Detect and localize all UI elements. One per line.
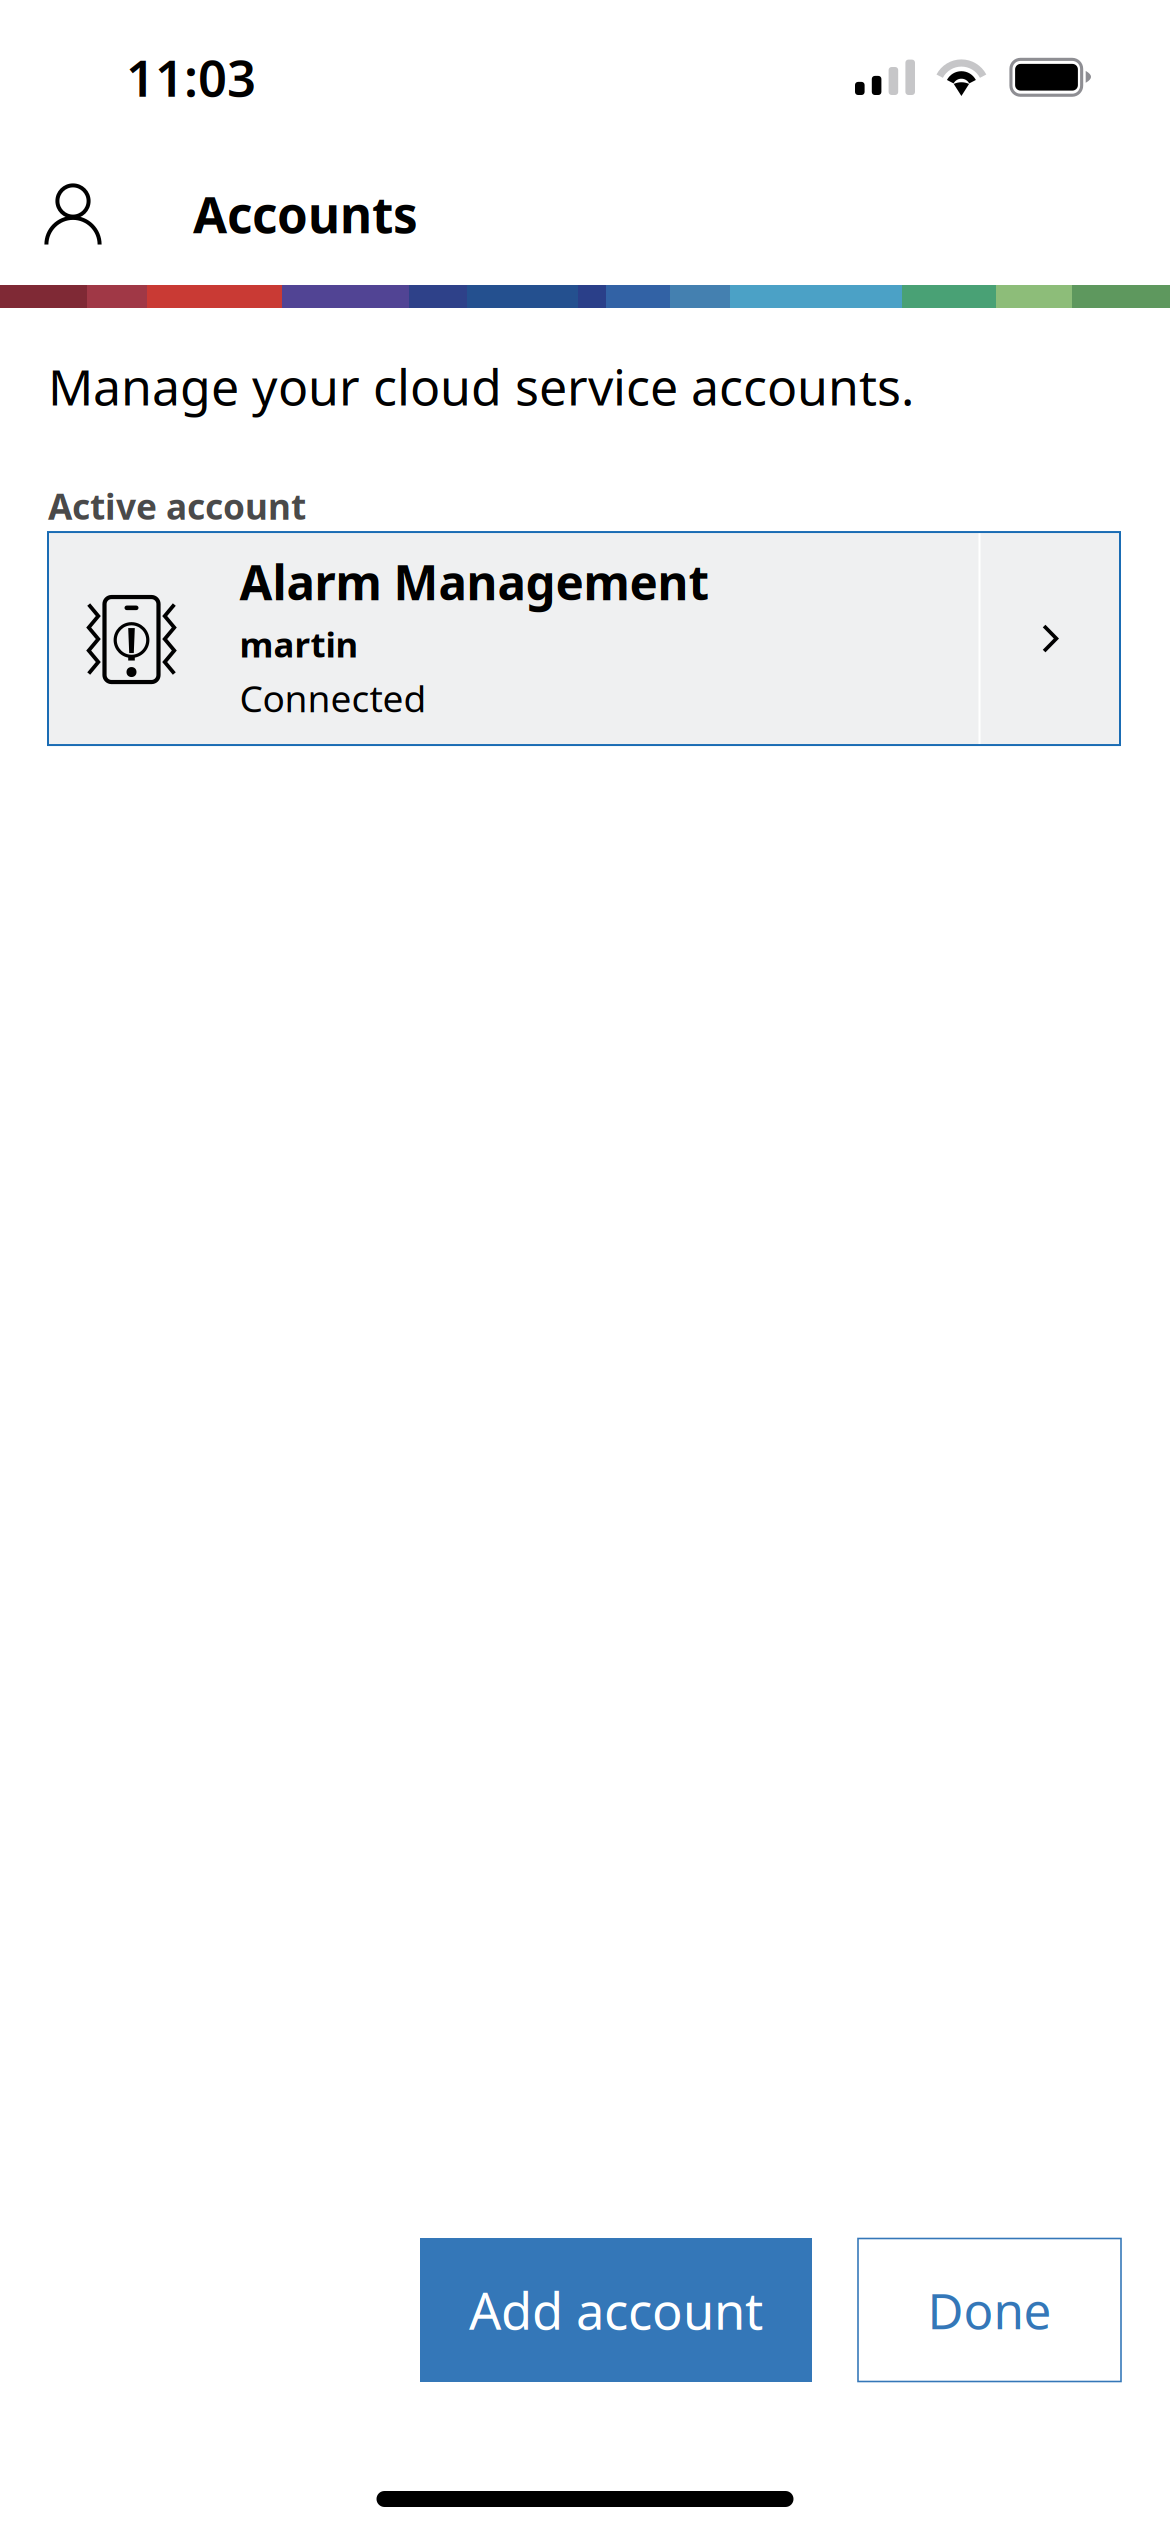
button[interactable]: Done bbox=[858, 2238, 1121, 2381]
button[interactable]: Alarm Management bbox=[48, 532, 1120, 745]
staticText: Done bbox=[927, 2277, 1051, 2343]
button[interactable]: Account bbox=[0, 154, 193, 274]
staticText: Connected bbox=[239, 673, 426, 723]
staticText: Accounts bbox=[193, 181, 418, 247]
button[interactable]: Add account bbox=[420, 2238, 812, 2382]
staticText: Manage your cloud service accounts. bbox=[48, 352, 914, 420]
staticText: Active account bbox=[48, 482, 306, 530]
staticText: martin bbox=[239, 620, 358, 668]
staticText: Add account bbox=[469, 2276, 763, 2344]
staticText: 11:03 bbox=[126, 43, 256, 111]
staticText: Alarm Management bbox=[239, 549, 709, 614]
